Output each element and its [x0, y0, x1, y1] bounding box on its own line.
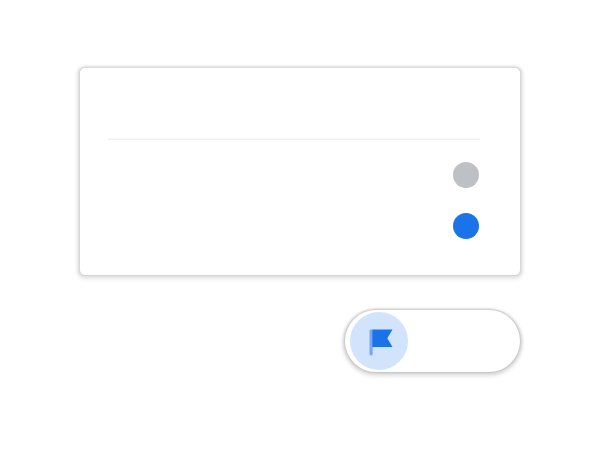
button[interactable]: Flag [345, 310, 520, 372]
button[interactable] [80, 68, 520, 275]
